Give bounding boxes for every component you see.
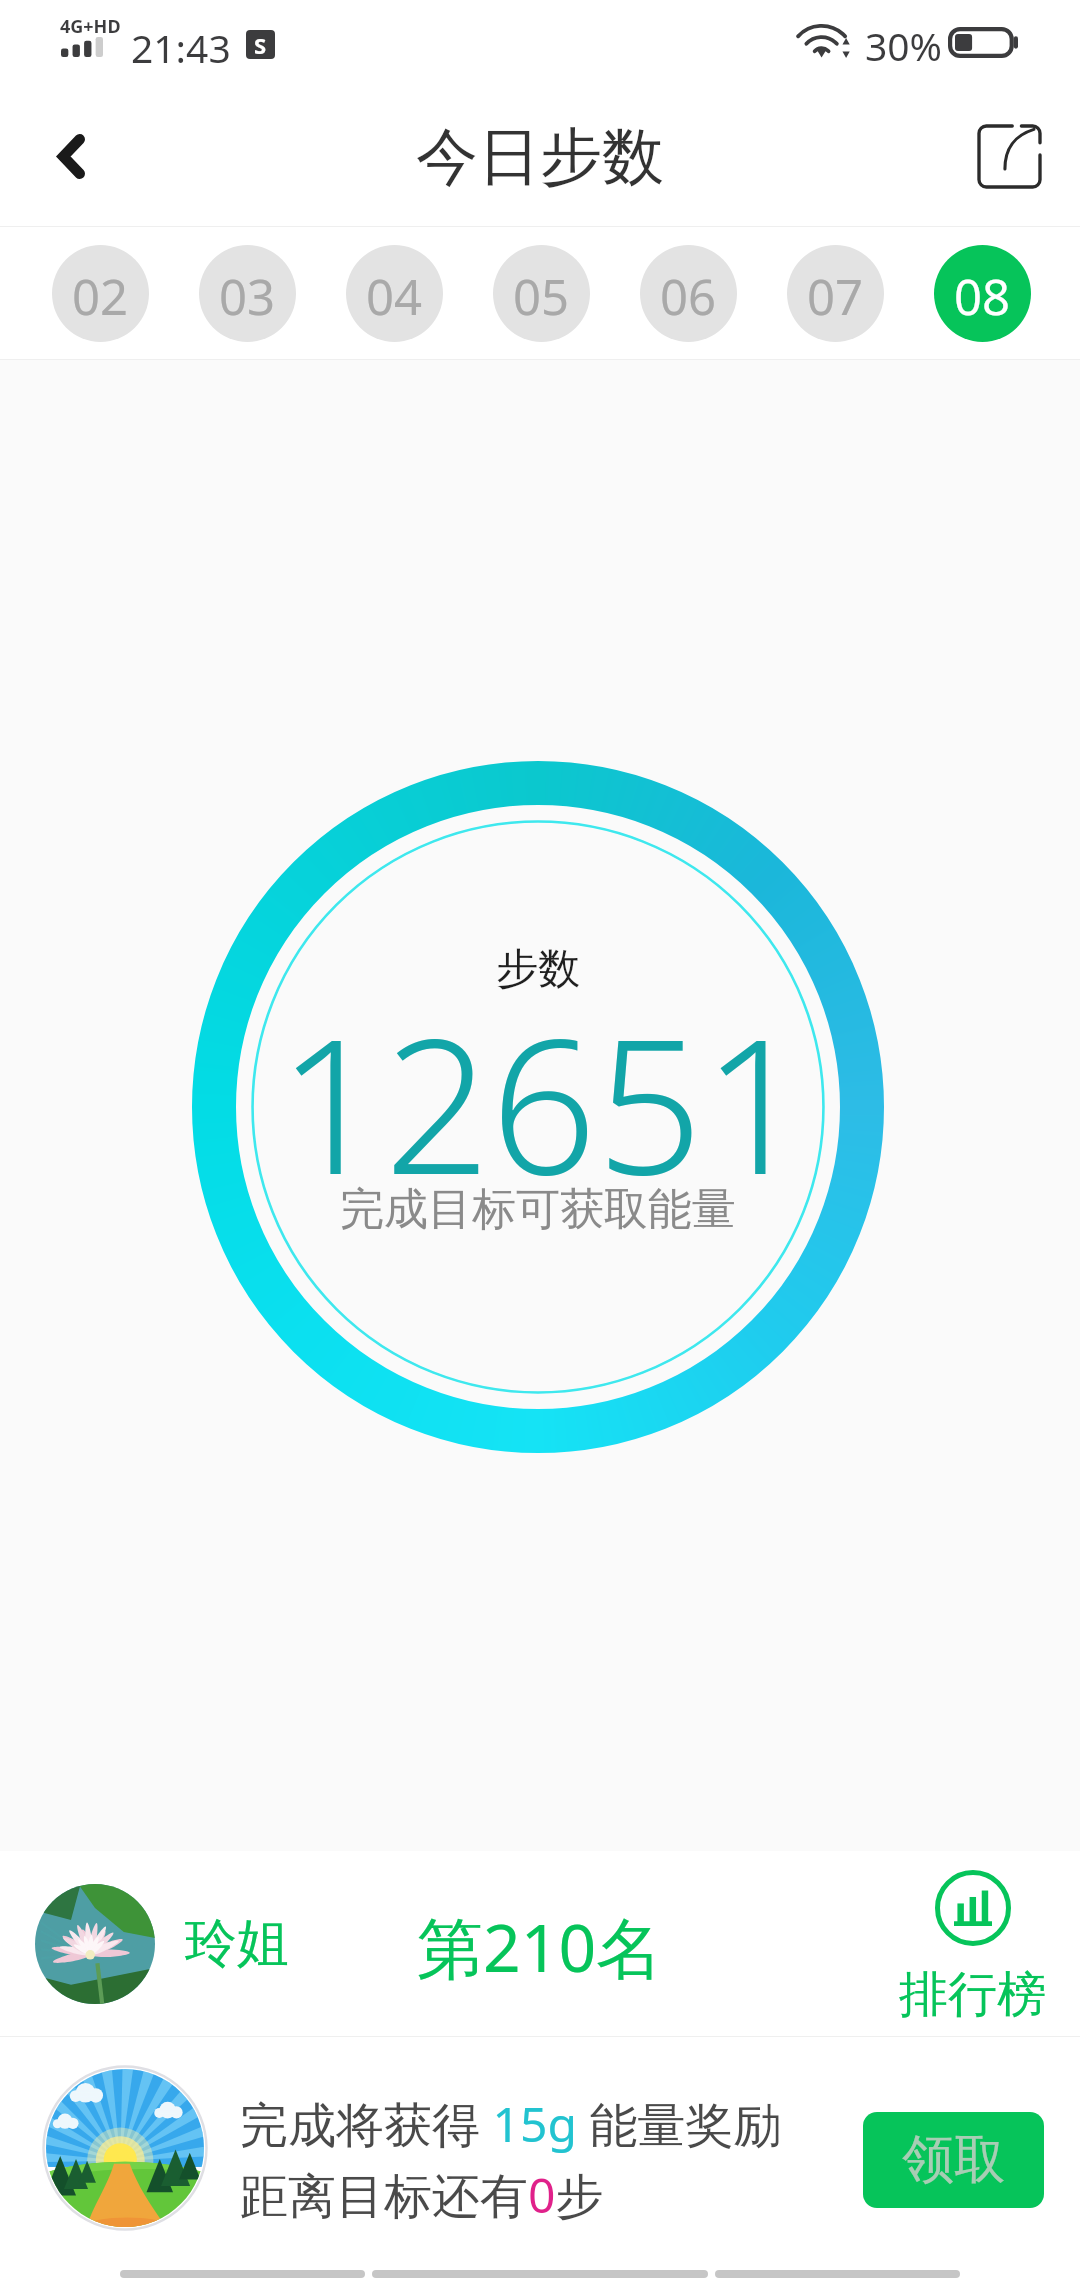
- staticText: 完成目标可获取能量: [340, 1182, 736, 1237]
- staticText: 步数: [496, 943, 580, 996]
- staticText: 完成将获得 15g 能量奖励: [240, 2091, 782, 2157]
- staticText: 05: [513, 263, 570, 330]
- staticText: 今日步数: [416, 118, 664, 196]
- staticText: 12651: [278, 975, 810, 1228]
- button[interactable]: 排行榜: [899, 1870, 1046, 2026]
- button[interactable]: 玲姐: [35, 1884, 289, 2004]
- button[interactable]: 02: [52, 245, 149, 342]
- staticText: S: [254, 30, 267, 59]
- button[interactable]: 07: [787, 245, 884, 342]
- staticText: 06: [660, 263, 717, 330]
- staticText: 07: [807, 263, 864, 330]
- staticText: 08: [954, 263, 1011, 330]
- button[interactable]: Back: [0, 105, 130, 227]
- staticText: 距离目标还有0步: [240, 2162, 604, 2228]
- staticText: 21:43: [131, 21, 231, 74]
- button[interactable]: 领取: [863, 2112, 1044, 2208]
- button[interactable]: Share: [950, 105, 1080, 227]
- staticText: 排行榜: [899, 1964, 1046, 2026]
- staticText: 领取: [902, 2127, 1006, 2193]
- staticText: 玲姐: [185, 1911, 289, 1977]
- staticText: 03: [219, 263, 276, 330]
- staticText: 第210名: [417, 1901, 663, 1991]
- button[interactable]: 03: [199, 245, 296, 342]
- button[interactable]: 06: [640, 245, 737, 342]
- staticText: 02: [72, 263, 129, 330]
- staticText: 04: [366, 263, 423, 330]
- button[interactable]: 05: [493, 245, 590, 342]
- staticText: 4G+HD: [60, 14, 121, 39]
- button[interactable]: 04: [346, 245, 443, 342]
- staticText: 30%: [865, 19, 943, 72]
- button[interactable]: 08: [934, 245, 1031, 342]
